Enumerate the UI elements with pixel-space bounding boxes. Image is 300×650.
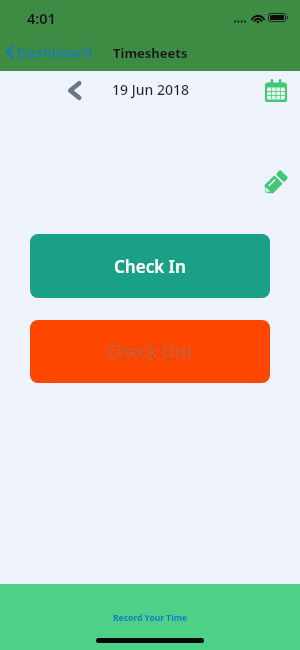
button[interactable]: Edit [258, 166, 292, 200]
staticText: Check Out [107, 340, 193, 363]
staticText: Record Your Time [113, 612, 188, 624]
button[interactable]: Check Out [30, 320, 270, 383]
staticText: Check In [114, 255, 186, 278]
button[interactable]: Check In [30, 234, 270, 298]
button[interactable]: Record Your Time [0, 610, 300, 626]
button[interactable]: Dashboard [5, 40, 93, 64]
staticText: Timesheets [113, 44, 188, 62]
button[interactable]: Previous day [61, 77, 88, 104]
staticText: 4:01 [27, 8, 56, 28]
staticText: Dashboard [17, 42, 93, 62]
button[interactable]: Calendar [262, 77, 289, 104]
staticText: 19 Jun 2018 [112, 80, 189, 99]
